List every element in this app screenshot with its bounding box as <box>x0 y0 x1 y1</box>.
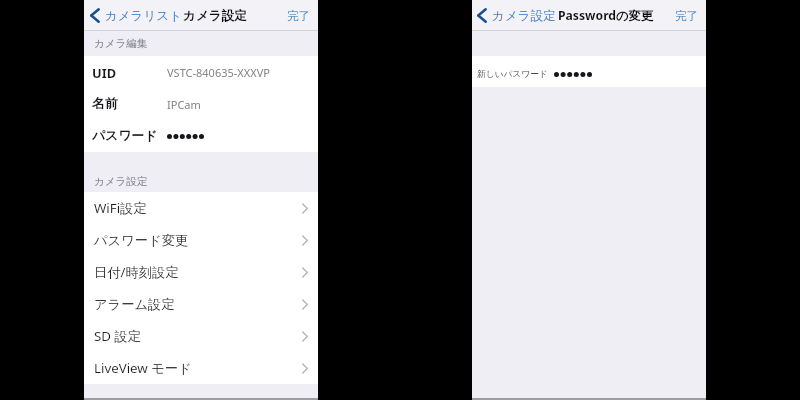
staticText: 日付/時刻設定 <box>94 263 179 281</box>
staticText: 新しいパスワード <box>477 69 548 80</box>
staticText: カメラ編集 <box>94 37 148 50</box>
staticText: WiFi設定 <box>94 199 147 217</box>
staticText: SD 設定 <box>94 327 142 345</box>
button[interactable]: 完了 <box>278 0 318 31</box>
staticText: UID <box>92 64 117 81</box>
button[interactable]: パスワード変更 <box>84 224 318 256</box>
staticText: LiveView モード <box>94 359 192 377</box>
other: Open SD 設定 <box>302 331 318 342</box>
button[interactable]: パスワード <box>84 120 318 152</box>
staticText: カメラ設定 <box>183 8 247 24</box>
button[interactable]: 名前 <box>84 88 318 120</box>
staticText: カメラ設定 <box>492 8 556 24</box>
other: Open アラーム設定 <box>302 299 318 310</box>
staticText: カメラリスト <box>105 8 182 24</box>
button[interactable]: Back to カメラリスト <box>84 0 247 31</box>
button[interactable]: Back to カメラ設定 <box>472 0 653 31</box>
button[interactable]: 新しいパスワード <box>472 56 706 87</box>
button[interactable]: WiFi設定 <box>84 192 318 224</box>
button[interactable]: アラーム設定 <box>84 288 318 320</box>
button[interactable]: LiveView モード <box>84 352 318 384</box>
button[interactable]: 日付/時刻設定 <box>84 256 318 288</box>
other: Open LiveView モード <box>302 363 318 374</box>
button[interactable]: 完了 <box>666 0 706 31</box>
other: Open パスワード変更 <box>302 235 318 246</box>
staticText: パスワード <box>92 128 158 144</box>
staticText: Passwordの変更 <box>558 7 653 24</box>
staticText: VSTC-840635-XXXVP <box>167 65 270 80</box>
button[interactable]: UID <box>84 56 318 88</box>
staticText: アラーム設定 <box>94 296 175 313</box>
staticText: カメラ設定 <box>94 175 148 188</box>
staticText: 完了 <box>675 9 698 23</box>
staticText: 完了 <box>287 9 310 23</box>
staticText: パスワード変更 <box>94 232 189 249</box>
staticText: 名前 <box>92 96 118 112</box>
button[interactable]: SD 設定 <box>84 320 318 352</box>
staticText: IPCam <box>167 97 201 112</box>
other: Open 日付/時刻設定 <box>302 267 318 278</box>
other: Open WiFi設定 <box>302 203 318 214</box>
